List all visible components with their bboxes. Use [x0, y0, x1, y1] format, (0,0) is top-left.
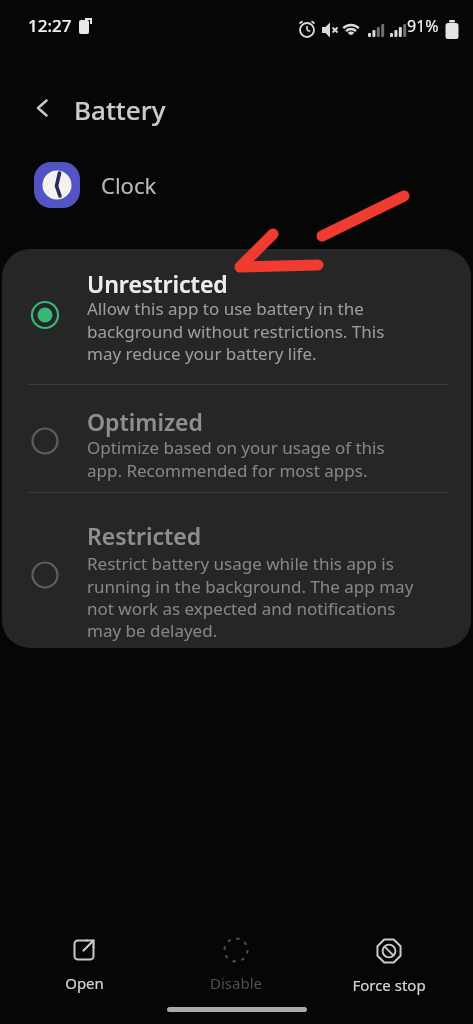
button[interactable]: Disable — [181, 936, 291, 993]
staticText: 12:27 — [28, 14, 72, 37]
button[interactable] — [2, 385, 471, 492]
staticText: Open — [65, 973, 104, 993]
button[interactable]: Open — [29, 936, 139, 993]
button[interactable] — [2, 493, 471, 648]
staticText: Clock — [101, 170, 157, 200]
staticText: Force stop — [352, 975, 426, 995]
staticText: Restricted — [87, 520, 202, 551]
button[interactable] — [20, 90, 64, 126]
staticText: 91% — [407, 15, 439, 37]
staticText: Restrict battery usage while this app is… — [87, 552, 414, 642]
staticText: Battery — [74, 92, 166, 127]
staticText: Optimize based on your usage of this app… — [87, 436, 385, 482]
button[interactable]: Clock — [34, 161, 334, 209]
staticText: Disable — [210, 973, 262, 993]
button[interactable]: Force stop — [334, 936, 444, 995]
staticText: Optimized — [87, 406, 203, 437]
staticText: Unrestricted — [87, 268, 228, 299]
button[interactable] — [2, 249, 471, 384]
staticText: Allow this app to use battery in the bac… — [87, 297, 385, 365]
